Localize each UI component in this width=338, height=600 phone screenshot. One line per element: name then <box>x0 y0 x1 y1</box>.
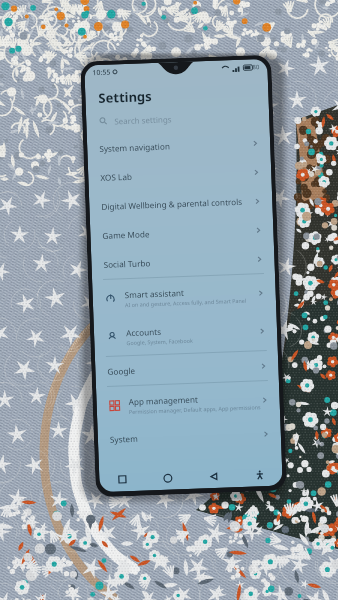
staticText: System <box>110 433 138 445</box>
button[interactable]: XOS Lab <box>88 157 272 192</box>
staticText: Smart assistant <box>124 287 185 300</box>
staticText: System navigation <box>99 140 170 154</box>
staticText: Game Mode <box>102 228 150 241</box>
button[interactable]: Smart assistant <box>92 274 276 318</box>
button[interactable]: Accessibility <box>236 461 283 487</box>
staticText: Digital Wellbeing & parental controls <box>101 196 242 212</box>
staticText: Google <box>107 365 136 377</box>
staticText: Social Turbo <box>103 257 151 270</box>
button[interactable]: Back <box>190 463 237 489</box>
staticText: XOS Lab <box>100 171 132 183</box>
button[interactable]: Home <box>144 465 191 491</box>
staticText: App management <box>128 393 199 407</box>
staticText: 10:55 <box>92 67 111 78</box>
staticText: Accounts <box>126 326 162 338</box>
staticText: 80 <box>252 63 260 71</box>
staticText: AI on and gesture, Access fully, and Sma… <box>125 297 247 308</box>
button[interactable]: Search <box>99 108 256 128</box>
button[interactable]: Social Turbo <box>91 244 275 279</box>
button[interactable]: System navigation <box>87 128 271 163</box>
button[interactable]: Accounts <box>93 312 278 356</box>
button[interactable]: System <box>97 418 281 454</box>
staticText: Settings <box>98 87 153 107</box>
button[interactable]: Digital Wellbeing & parental controls <box>89 186 273 221</box>
staticText: Permission manager, Default apps, App pe… <box>129 403 261 415</box>
other: Search <box>99 117 107 125</box>
button[interactable]: Recents <box>99 467 145 492</box>
button[interactable]: Game Mode <box>90 215 274 250</box>
staticText: Search settings <box>114 113 172 126</box>
staticText: Google, System, Facebook <box>126 337 193 346</box>
button[interactable]: App management <box>96 381 280 425</box>
button[interactable]: Google <box>95 351 279 386</box>
